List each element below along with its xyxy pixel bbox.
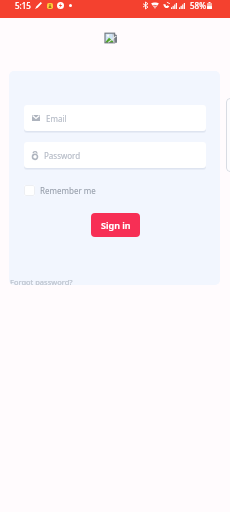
button[interactable]: Email xyxy=(24,105,206,131)
staticText: Forgot password? xyxy=(10,277,73,285)
staticText: Sign in xyxy=(101,219,131,231)
staticText: 58% xyxy=(190,0,206,11)
staticText: Password xyxy=(44,150,81,161)
staticText: 5:15 xyxy=(15,0,31,11)
staticText: Remember me xyxy=(40,185,96,196)
button[interactable]: Remember me xyxy=(24,185,96,196)
button[interactable]: Forgot password? xyxy=(10,277,73,285)
button[interactable]: Password xyxy=(24,142,206,168)
staticText: Email xyxy=(46,113,67,124)
button[interactable]: Sign in xyxy=(91,213,140,237)
